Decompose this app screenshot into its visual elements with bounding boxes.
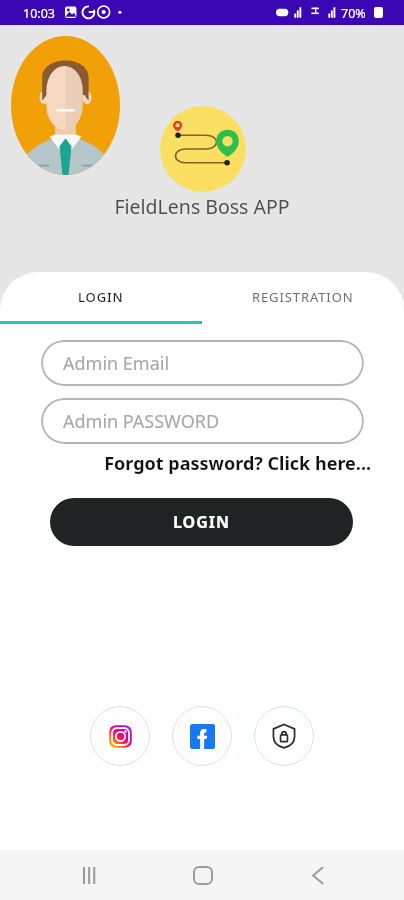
button[interactable]: Recent apps (62, 854, 118, 896)
staticText: Admin PASSWORD (63, 409, 220, 434)
button[interactable]: Admin PASSWORD (41, 398, 364, 444)
button[interactable]: REGISTRATION (202, 276, 404, 317)
staticText: LOGIN (78, 288, 124, 306)
staticText: 10:03 (23, 5, 55, 22)
button[interactable]: Admin Email (41, 340, 364, 386)
button[interactable]: LOGIN (50, 498, 353, 546)
staticText: LOGIN (173, 511, 231, 533)
staticText: 70% (341, 5, 366, 22)
staticText: FieldLens Boss APP (0, 193, 404, 220)
button[interactable]: Forgot password? Click here... (0, 450, 404, 476)
staticText: Forgot password? Click here... (0, 451, 371, 476)
button[interactable]: Instagram (90, 706, 150, 766)
button[interactable]: Facebook (172, 706, 232, 766)
button[interactable]: Home (175, 854, 231, 896)
staticText: Admin Email (63, 351, 170, 376)
button[interactable]: Back (289, 854, 345, 896)
staticText: REGISTRATION (252, 288, 354, 306)
button[interactable]: LOGIN (0, 276, 202, 317)
button[interactable]: Privacy policy (254, 706, 314, 766)
